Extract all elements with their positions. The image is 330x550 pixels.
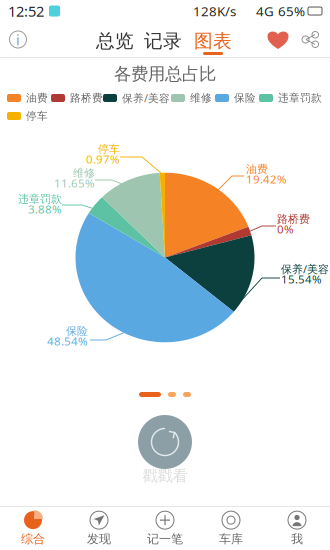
button[interactable]: 发现 xyxy=(66,507,132,550)
staticText: 图表 xyxy=(194,29,232,52)
staticText: 0.97% xyxy=(86,151,120,167)
staticText: 记一笔 xyxy=(147,532,183,546)
button[interactable]: Share xyxy=(294,22,326,57)
button[interactable]: Refresh chart xyxy=(120,388,210,484)
staticText: 保养/美容 xyxy=(281,262,329,276)
staticText: 保险 xyxy=(234,91,256,104)
staticText: 保养/美容 xyxy=(122,91,170,105)
button[interactable]: Info xyxy=(0,22,36,57)
button[interactable]: 我 xyxy=(264,507,330,550)
staticText: 总览 xyxy=(96,29,134,52)
staticText: 15.54% xyxy=(281,271,322,287)
staticText: 记录 xyxy=(144,29,182,52)
staticText: 65% xyxy=(278,2,305,20)
staticText: i xyxy=(16,30,20,49)
staticText: 路桥费 xyxy=(277,212,310,226)
staticText: 路桥费 xyxy=(70,91,103,104)
button[interactable]: 记一笔 xyxy=(132,507,198,550)
staticText: 48.54% xyxy=(47,333,88,349)
staticText: 我 xyxy=(291,532,303,546)
staticText: 综合 xyxy=(21,532,45,546)
button[interactable]: 车库 xyxy=(198,507,264,550)
staticText: 4G xyxy=(256,2,274,20)
staticText: 各费用总占比 xyxy=(114,63,216,85)
button[interactable]: Favourite xyxy=(262,22,294,57)
staticText: 19.42% xyxy=(246,171,287,187)
staticText: 维修 xyxy=(73,166,95,180)
button[interactable]: 总览 xyxy=(93,22,137,57)
staticText: 油费 xyxy=(26,91,48,104)
staticText: 停车 xyxy=(26,109,48,122)
staticText: 戳戳看 xyxy=(142,466,187,486)
staticText: 11.65% xyxy=(54,175,95,191)
staticText: 违章罚款 xyxy=(18,192,62,206)
staticText: 油费 xyxy=(246,162,268,176)
staticText: 停车 xyxy=(98,142,120,156)
staticText: 128K/s xyxy=(193,2,236,20)
staticText: 车库 xyxy=(219,532,243,546)
staticText: 维修 xyxy=(190,91,212,104)
staticText: 发现 xyxy=(87,532,111,546)
button[interactable]: 记录 xyxy=(141,22,185,57)
staticText: 保险 xyxy=(66,324,88,338)
staticText: 3.88% xyxy=(28,201,62,217)
button[interactable]: 图表 xyxy=(191,22,235,57)
staticText: 0% xyxy=(277,221,294,237)
button[interactable]: 综合 xyxy=(0,507,66,550)
staticText: 12:52 xyxy=(8,1,44,21)
staticText: 违章罚款 xyxy=(278,91,322,104)
